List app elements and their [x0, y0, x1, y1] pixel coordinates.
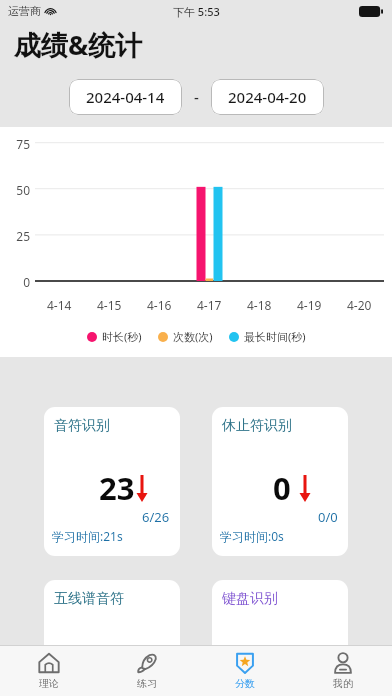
staticText: -	[194, 87, 199, 107]
staticText: 4-18	[247, 297, 272, 313]
button[interactable]: 2024-04-20	[211, 79, 324, 115]
staticText: 75	[0, 136, 30, 152]
staticText: 50	[0, 182, 30, 198]
button[interactable]: 练习	[98, 646, 196, 696]
button[interactable]: 五线谱音符	[44, 580, 180, 690]
staticText: 25	[0, 228, 30, 244]
button[interactable]: 音符识别	[44, 407, 180, 556]
staticText: 学习时间:0s	[220, 528, 284, 544]
staticText: 下午 5:53	[173, 4, 220, 19]
staticText: 6/26	[142, 508, 170, 526]
button[interactable]: 休止符识别	[212, 407, 348, 556]
staticText: 0/0	[318, 508, 338, 526]
staticText: 0	[273, 467, 291, 509]
staticText: 0	[0, 274, 30, 290]
staticText: 练习	[137, 677, 157, 690]
staticText: 运营商	[8, 4, 41, 18]
button[interactable]: 2024-04-14	[69, 79, 182, 115]
staticText: 成绩&统计	[14, 26, 143, 63]
staticText: 理论	[39, 677, 59, 690]
staticText: 2024-04-20	[228, 87, 307, 107]
staticText: 休止符识别	[222, 417, 292, 435]
staticText: 4-15	[97, 297, 122, 313]
staticText: 学习时间:21s	[52, 528, 123, 544]
staticText: 我的	[333, 677, 353, 690]
staticText: 4-16	[147, 297, 172, 313]
staticText: 4-14	[47, 297, 72, 313]
staticText: 键盘识别	[222, 590, 278, 608]
button[interactable]: 理论	[0, 646, 98, 696]
button[interactable]: 键盘识别	[212, 580, 348, 690]
staticText: 最长时间(秒)	[244, 329, 306, 344]
staticText: 2024-04-14	[86, 87, 165, 107]
button[interactable]: 我的	[294, 646, 392, 696]
staticText: 23	[99, 467, 135, 509]
staticText: 分数	[235, 677, 255, 690]
staticText: 五线谱音符	[54, 590, 124, 608]
staticText: 4-20	[347, 297, 372, 313]
button[interactable]: 分数	[196, 646, 294, 696]
staticText: 音符识别	[54, 417, 110, 435]
staticText: 4-19	[297, 297, 322, 313]
staticText: 时长(秒)	[102, 329, 142, 344]
staticText: 4-17	[197, 297, 222, 313]
staticText: 次数(次)	[173, 329, 213, 344]
